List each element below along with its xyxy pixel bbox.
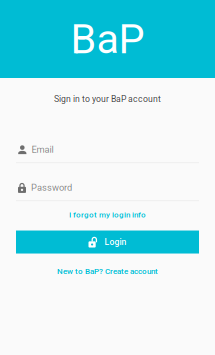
staticText: Sign in to your BaP account	[54, 94, 161, 104]
button[interactable]: Login	[16, 230, 199, 253]
button[interactable]: Password	[16, 175, 199, 201]
staticText: I forgot my login info	[69, 210, 146, 220]
button[interactable]: Email	[16, 137, 199, 163]
staticText: Login	[104, 237, 126, 247]
staticText: Email	[32, 144, 54, 155]
staticText: Password	[31, 182, 72, 193]
button[interactable]: New to BaP? Create account	[51, 261, 164, 281]
staticText: BaP	[70, 15, 144, 63]
staticText: New to BaP? Create account	[57, 266, 158, 276]
button[interactable]: I forgot my login info	[63, 206, 152, 224]
